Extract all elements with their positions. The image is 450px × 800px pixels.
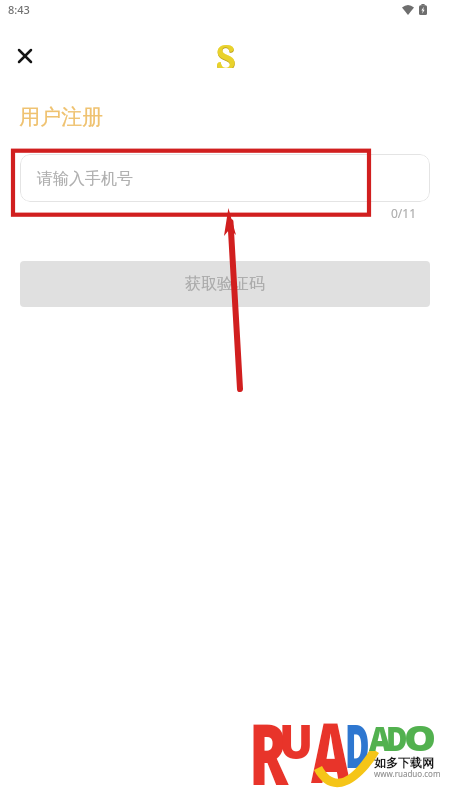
staticText: U xyxy=(279,709,314,773)
staticText: S xyxy=(216,34,236,68)
staticText: D xyxy=(386,715,407,761)
staticText: A xyxy=(369,715,391,761)
button[interactable]: Close xyxy=(11,42,39,70)
staticText: O xyxy=(404,714,436,762)
staticText: S xyxy=(216,34,237,68)
staticText: 获取验证码 xyxy=(185,274,265,294)
staticText: D xyxy=(345,703,370,786)
staticText: 0/11 xyxy=(391,205,417,221)
staticText: 如多下载网 xyxy=(374,755,434,770)
staticText: R xyxy=(249,694,288,800)
staticText: 用户注册 xyxy=(19,104,103,130)
button[interactable]: 获取验证码 xyxy=(20,261,430,307)
button[interactable]: 请输入手机号 xyxy=(20,154,430,202)
staticText: 8:43 xyxy=(8,2,30,17)
staticText: 请输入手机号 xyxy=(37,169,133,189)
staticText: A xyxy=(311,694,351,800)
staticText: www.ruaduo.com xyxy=(374,768,441,779)
